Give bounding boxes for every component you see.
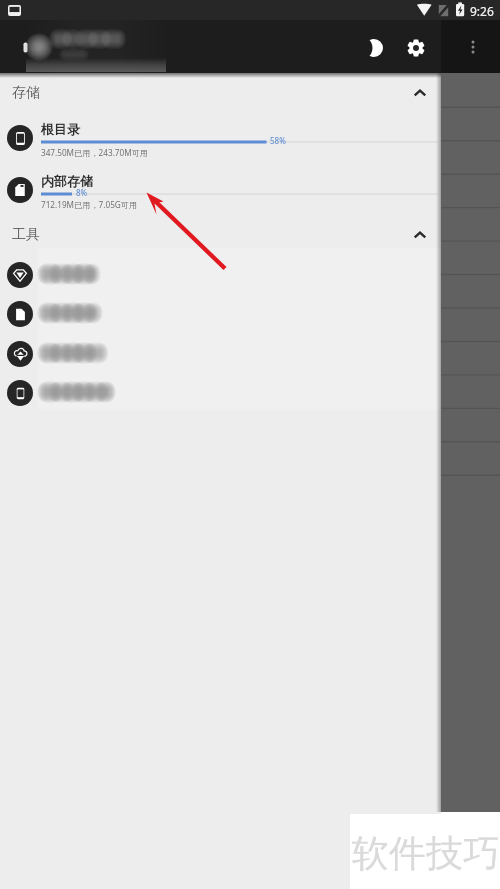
staticText: 347.50M已用，243.70M可用 (41, 147, 149, 158)
staticText: 软件技巧 (352, 830, 500, 877)
button[interactable]: Night mode (356, 30, 391, 65)
staticText: 712.19M已用，7.05G可用 (41, 199, 138, 210)
staticText: 58% (270, 135, 286, 146)
staticText: 存储 (12, 84, 40, 102)
button[interactable]: 根目录 (0, 125, 441, 171)
button[interactable]: 存储 (0, 78, 441, 108)
staticText: 根目录 (41, 121, 80, 137)
button[interactable]: More options (459, 33, 487, 61)
button[interactable] (0, 373, 441, 412)
button[interactable] (0, 294, 441, 333)
staticText: 9:26 (470, 3, 494, 19)
staticText: 工具 (12, 226, 40, 244)
staticText: 内部存储 (41, 173, 93, 189)
staticText: 8% (76, 187, 88, 198)
button[interactable]: 内部存储 (0, 177, 441, 223)
button[interactable] (0, 255, 441, 294)
button[interactable]: 工具 (0, 220, 441, 250)
button[interactable] (0, 334, 441, 373)
button[interactable]: Settings (399, 31, 432, 64)
